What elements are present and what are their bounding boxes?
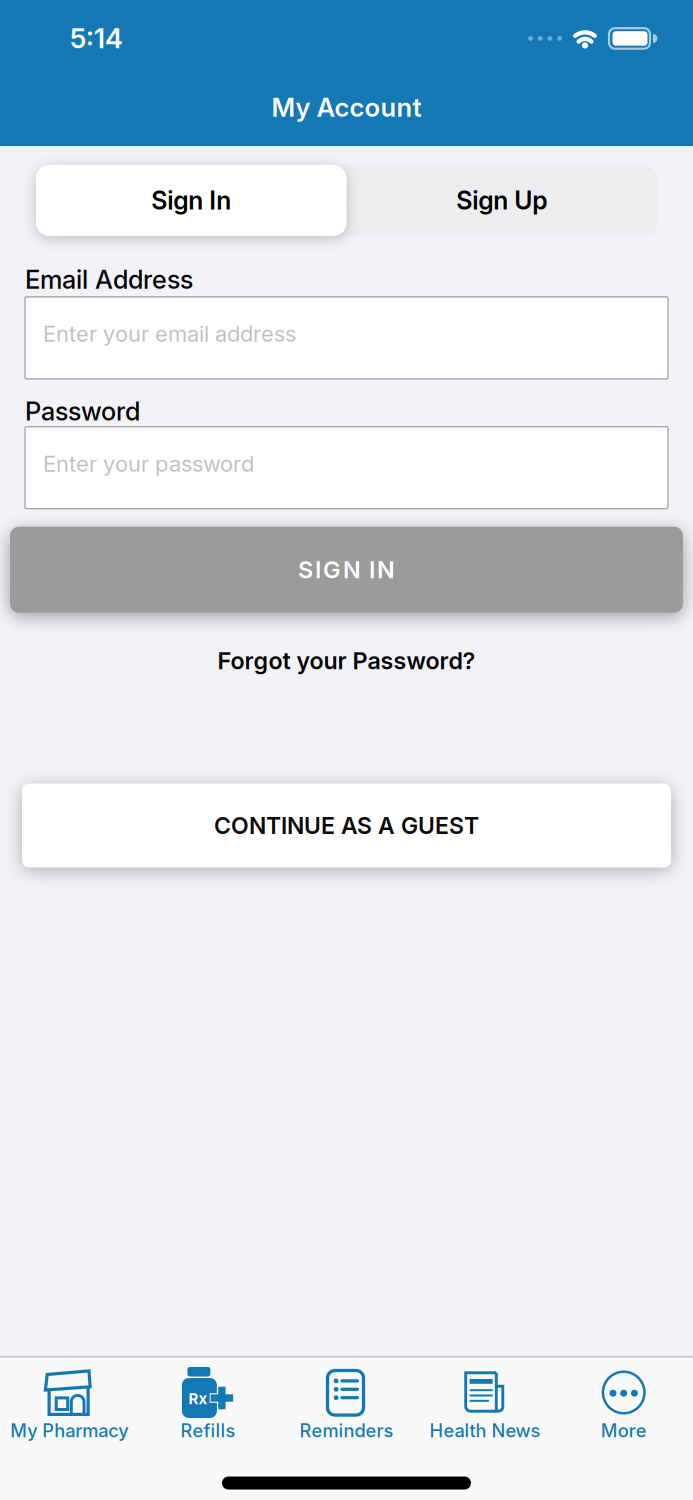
button[interactable]: Rx (139, 1367, 277, 1444)
staticText: My Account (271, 89, 421, 126)
staticText: My Pharmacy (10, 1417, 128, 1444)
button[interactable]: Reminders (277, 1367, 416, 1444)
staticText: Forgot your Password? (217, 644, 475, 677)
staticText: S I G N I N (298, 553, 395, 587)
button[interactable]: CONTINUE AS A GUEST (0, 783, 693, 867)
button[interactable]: Forgot your Password? (217, 644, 475, 677)
staticText: More (601, 1417, 647, 1444)
button[interactable]: More (554, 1367, 693, 1444)
staticText: 5:14 (70, 19, 123, 58)
button[interactable]: Sign Up (346, 182, 657, 218)
staticText: Password (25, 396, 140, 427)
button[interactable]: Health News (416, 1367, 554, 1444)
button[interactable]: My Pharmacy (0, 1367, 139, 1444)
staticText: Health News (430, 1417, 541, 1444)
staticText: Rx (188, 1388, 207, 1410)
staticText: Refills (180, 1417, 235, 1444)
button[interactable]: Sign In (36, 165, 346, 236)
staticText: Reminders (299, 1417, 393, 1444)
staticText: Enter your password (43, 448, 254, 480)
staticText: Sign Up (456, 182, 547, 218)
staticText: Enter your email address (43, 318, 296, 350)
button[interactable]: S I G N I N (0, 527, 693, 613)
staticText: Email Address (25, 264, 193, 295)
staticText: Sign In (151, 182, 231, 218)
staticText: CONTINUE AS A GUEST (214, 809, 479, 842)
